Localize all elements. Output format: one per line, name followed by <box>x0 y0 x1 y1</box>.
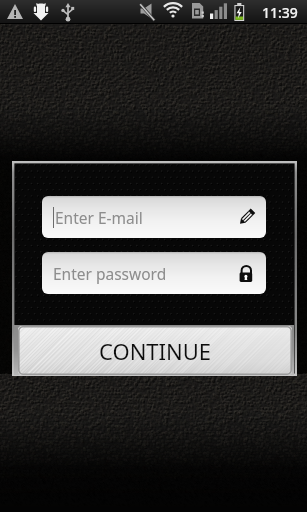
button[interactable]: Enter E-mail <box>42 196 266 238</box>
button[interactable]: Enter password <box>42 252 266 294</box>
staticText: CONTINUE <box>99 336 212 366</box>
staticText: 11:39 <box>262 3 298 22</box>
button[interactable]: CONTINUE <box>18 326 292 375</box>
staticText: Enter password <box>53 263 167 284</box>
staticText: Enter E-mail <box>55 207 143 228</box>
